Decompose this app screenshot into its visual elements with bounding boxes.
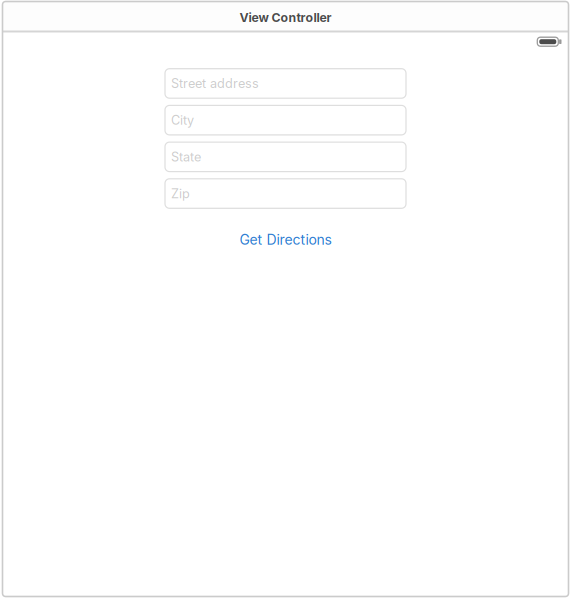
staticText: Get Directions xyxy=(239,231,331,248)
staticText: Zip xyxy=(171,186,190,201)
button[interactable]: Get Directions xyxy=(231,228,339,251)
staticText: City xyxy=(171,112,194,128)
staticText: View Controller xyxy=(239,10,331,25)
staticText: Street address xyxy=(171,76,259,91)
button[interactable]: City xyxy=(165,105,406,135)
button[interactable]: Zip xyxy=(165,179,406,208)
button[interactable]: State xyxy=(165,142,406,172)
button[interactable]: Street address xyxy=(165,69,406,98)
staticText: State xyxy=(171,149,201,164)
